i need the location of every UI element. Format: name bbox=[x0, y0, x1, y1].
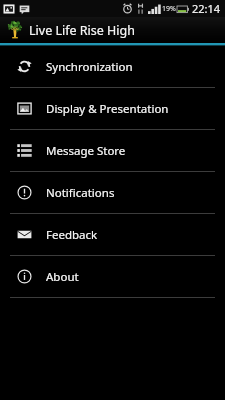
staticText: Display & Presentation bbox=[46, 101, 169, 117]
staticText: 22:14 bbox=[192, 1, 221, 16]
button[interactable]: Synchronization bbox=[0, 46, 225, 87]
staticText: Notifications bbox=[46, 185, 115, 201]
button[interactable]: Feedback bbox=[0, 214, 225, 255]
staticText: Feedback bbox=[46, 227, 98, 243]
staticText: Message Store bbox=[46, 143, 126, 159]
staticText: About bbox=[46, 269, 79, 285]
button[interactable]: Display & Presentation bbox=[0, 88, 225, 129]
button[interactable]: Notifications bbox=[0, 172, 225, 213]
staticText: Live Life Rise High bbox=[29, 22, 135, 39]
staticText: 19% bbox=[162, 4, 176, 14]
button[interactable]: About bbox=[0, 256, 225, 297]
button[interactable]: Message Store bbox=[0, 130, 225, 171]
staticText: Synchronization bbox=[46, 59, 133, 75]
